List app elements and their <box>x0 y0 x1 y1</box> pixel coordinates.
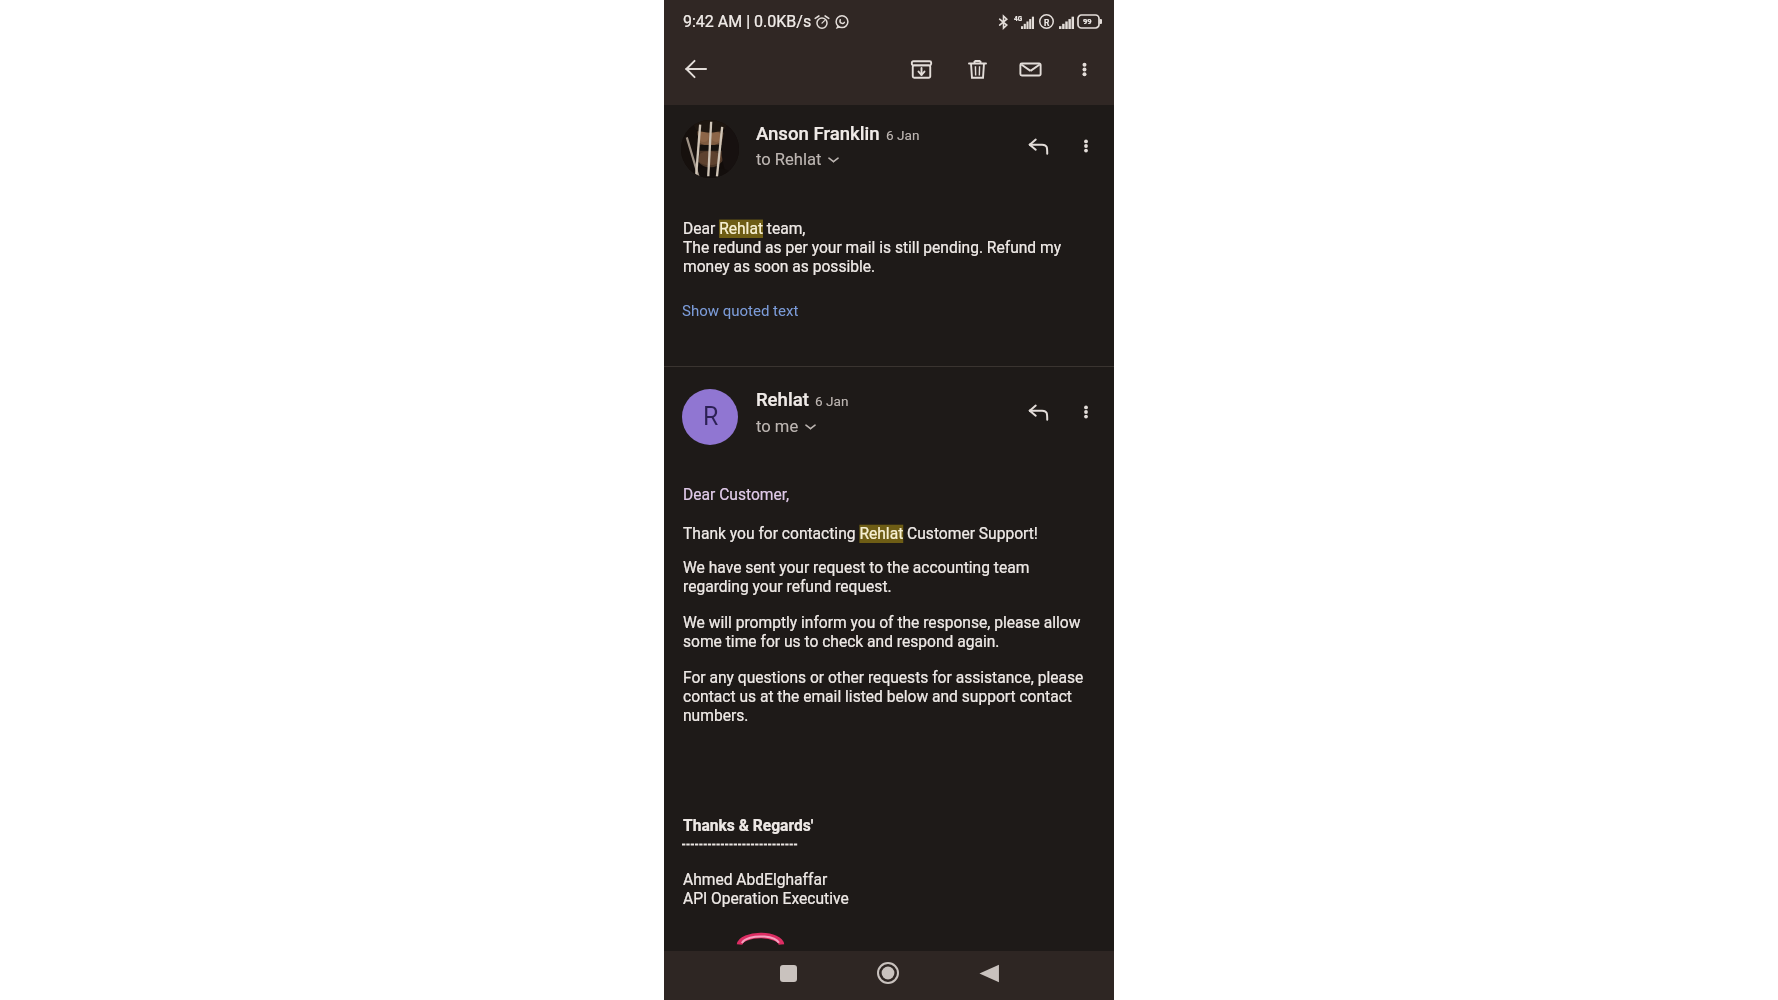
staticText: 6 Jan <box>886 127 920 143</box>
staticText: R <box>1044 18 1050 28</box>
button[interactable]: Back <box>965 949 1013 997</box>
staticText: to me <box>756 417 799 436</box>
button[interactable]: Show quoted text <box>680 302 801 320</box>
staticText: Ahmed AbdElghaffar API Operation Executi… <box>683 871 849 907</box>
button[interactable]: Message from Anson Franklin <box>664 106 1114 192</box>
staticText: Rehlat <box>756 389 809 411</box>
staticText: 9:42 AM | 0.0KB/s <box>683 12 812 31</box>
button[interactable]: Archive <box>901 49 941 89</box>
button[interactable]: Message from Rehlat <box>664 372 1114 458</box>
button[interactable]: Reply <box>1018 392 1058 432</box>
button[interactable]: More options <box>1064 49 1104 89</box>
staticText: Show quoted text <box>682 302 799 320</box>
button[interactable]: Mark as unread <box>1010 49 1050 89</box>
button[interactable]: More options <box>1066 392 1106 432</box>
staticText: to Rehlat <box>756 150 822 169</box>
staticText: Dear Rehlat team, The redund as per your… <box>683 220 1062 276</box>
button[interactable]: Delete <box>957 49 997 89</box>
staticText: 99 <box>1083 17 1092 26</box>
staticText: We have sent your request to the account… <box>683 559 1030 596</box>
button[interactable]: to me <box>754 417 819 436</box>
staticText: Anson Franklin <box>756 123 880 145</box>
button[interactable]: Home <box>864 949 912 997</box>
staticText: R <box>703 402 719 431</box>
staticText: For any questions or other requests for … <box>683 669 1084 725</box>
button[interactable]: to Rehlat <box>754 150 842 169</box>
staticText: Thank you for contacting Rehlat Customer… <box>683 525 1038 543</box>
staticText: 4G <box>1014 15 1023 23</box>
button[interactable]: Recents <box>764 949 812 997</box>
button[interactable]: Reply <box>1018 126 1058 166</box>
staticText: Dear Customer, <box>683 486 790 504</box>
staticText: We will promptly inform you of the respo… <box>683 614 1081 651</box>
staticText: 6 Jan <box>815 393 849 409</box>
button[interactable]: More options <box>1066 126 1106 166</box>
button[interactable]: Back <box>676 49 716 89</box>
staticText: Thanks & Regards' <box>683 817 814 835</box>
